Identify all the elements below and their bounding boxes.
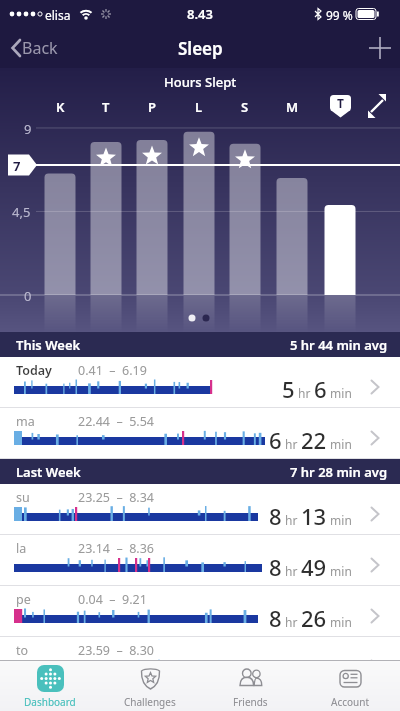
staticText: M	[286, 98, 299, 114]
staticText: 8	[269, 654, 282, 684]
staticText: 31	[301, 654, 327, 684]
staticText: elisa	[45, 7, 71, 23]
button[interactable]	[360, 28, 400, 68]
staticText: pe	[16, 591, 31, 608]
staticText: 0	[24, 287, 32, 303]
staticText: Today	[16, 362, 52, 379]
staticText: 23.59 – 8.30	[78, 642, 155, 659]
staticText: hr	[282, 563, 301, 579]
button[interactable]: pe	[0, 586, 400, 637]
staticText: su	[16, 489, 30, 506]
staticText: S	[241, 98, 249, 114]
staticText: Back	[22, 37, 58, 59]
staticText: 22	[301, 425, 327, 455]
staticText: ma	[16, 413, 35, 430]
staticText: 9	[24, 120, 32, 136]
staticText: la	[16, 540, 27, 557]
staticText: 8.43	[187, 5, 213, 23]
staticText: Last Week	[16, 463, 81, 481]
staticText: 0.04 – 9.21	[78, 591, 147, 608]
staticText: hr	[295, 385, 314, 401]
button[interactable]: Challenges	[100, 660, 200, 711]
button[interactable]: Today	[0, 357, 400, 408]
staticText: 8	[269, 501, 282, 531]
staticText: to	[16, 642, 29, 659]
staticText: 8	[269, 552, 282, 582]
staticText: This Week	[16, 336, 81, 354]
button[interactable]: Account	[300, 660, 400, 711]
staticText: Challenges	[124, 695, 176, 709]
staticText: L	[195, 98, 203, 114]
staticText: 8	[269, 603, 282, 633]
staticText: Friends	[233, 695, 268, 709]
staticText: 6	[314, 374, 327, 404]
staticText: hr	[282, 512, 301, 528]
staticText: 13	[301, 501, 327, 531]
staticText: hr	[282, 614, 301, 630]
staticText: K	[56, 98, 65, 114]
staticText: min	[327, 512, 352, 528]
staticText: min	[327, 665, 352, 681]
staticText: 5	[282, 374, 295, 404]
staticText: hr	[282, 436, 301, 452]
staticText: Hours Slept	[164, 73, 237, 91]
staticText: Sleep	[178, 37, 223, 60]
staticText: 0.41 – 6.19	[78, 362, 147, 379]
staticText: 6	[269, 425, 282, 455]
staticText: 26	[301, 603, 327, 633]
staticText: min	[327, 563, 352, 579]
staticText: Account	[331, 695, 370, 709]
button[interactable]: Back	[10, 37, 58, 59]
staticText: 23.25 – 8.34	[78, 489, 155, 506]
button[interactable]: Friends	[200, 660, 300, 711]
staticText: 7 hr 28 min avg	[290, 463, 388, 481]
staticText: 4,5	[12, 203, 31, 219]
staticText: 5 hr 44 min avg	[290, 336, 388, 354]
staticText: min	[327, 385, 352, 401]
staticText: 99 %	[326, 7, 353, 23]
staticText: 49	[301, 552, 327, 582]
staticText: T	[102, 98, 110, 114]
button[interactable]: la	[0, 535, 400, 586]
staticText: 22.44 – 5.54	[78, 413, 155, 430]
button[interactable]: Dashboard	[0, 660, 100, 711]
button[interactable]: ma	[0, 408, 400, 459]
staticText: 23.14 – 8.36	[78, 540, 155, 557]
staticText: min	[327, 614, 352, 630]
staticText: T	[337, 95, 344, 111]
button[interactable]: su	[0, 484, 400, 535]
staticText: P	[148, 98, 156, 114]
button[interactable]: to	[0, 637, 400, 688]
staticText: min	[327, 436, 352, 452]
staticText: 7	[13, 157, 21, 173]
staticText: Dashboard	[24, 695, 76, 709]
